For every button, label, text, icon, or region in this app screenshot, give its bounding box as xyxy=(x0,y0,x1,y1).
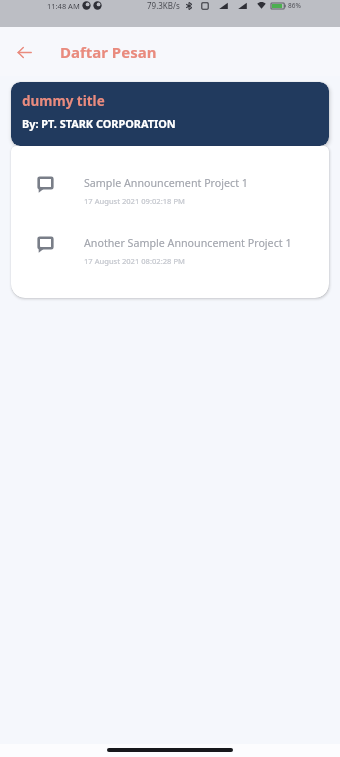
button[interactable]: Back xyxy=(6,34,42,70)
staticText: 11:48 AM xyxy=(47,1,80,11)
staticText: Daftar Pesan xyxy=(60,42,157,62)
button[interactable]: Sample Announcement Project 1 xyxy=(11,176,329,206)
staticText: 17 August 2021 09:02:18 PM xyxy=(84,196,185,206)
staticText: dummy title xyxy=(22,92,105,110)
staticText: 86% xyxy=(288,1,301,10)
staticText: By: PT. STARK CORPORATION xyxy=(22,116,176,131)
staticText: Another Sample Announcement Project 1 xyxy=(84,236,292,251)
staticText: Sample Announcement Project 1 xyxy=(84,176,248,191)
staticText: 17 August 2021 08:02:28 PM xyxy=(84,256,185,266)
button[interactable]: Another Sample Announcement Project 1 xyxy=(11,236,329,266)
staticText: 79.3KB/s xyxy=(147,0,180,11)
